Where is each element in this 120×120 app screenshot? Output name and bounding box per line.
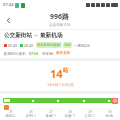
staticText: 最新机场	[40, 32, 63, 39]
staticText: 29	[88, 110, 92, 114]
button[interactable]: 详情	[63, 42, 72, 48]
staticText: 28	[68, 110, 72, 114]
staticText: 26	[29, 110, 33, 114]
staticText: 等车辆:	[42, 51, 54, 56]
staticText: 公交新街站	[4, 32, 32, 39]
staticText: 996路	[50, 12, 70, 22]
staticText: 30	[108, 110, 112, 114]
button[interactable]: 26	[22, 110, 39, 118]
button[interactable]: 28	[61, 110, 78, 118]
button[interactable]: 30	[101, 110, 118, 118]
staticText: 25	[9, 110, 13, 114]
staticText: 20:40	[24, 43, 34, 48]
staticText: 14分钟 / 5.2公里	[47, 82, 74, 87]
staticText: 距离时分发车:	[4, 51, 27, 56]
button[interactable]: 25	[2, 110, 19, 118]
staticText: ·	[70, 66, 72, 73]
staticText: 首末班时间准确	[37, 43, 61, 47]
staticText: 点击切换方向	[49, 23, 71, 28]
staticText: 14	[50, 66, 63, 81]
staticText: 07:50	[29, 51, 39, 56]
staticText: 05:40	[8, 43, 18, 48]
staticText: 定淮门	[64, 114, 75, 118]
button[interactable]: Back	[0, 12, 16, 28]
button[interactable]: 27	[42, 110, 59, 118]
staticText: 详情	[64, 43, 71, 47]
staticText: 草场门	[45, 114, 56, 118]
button[interactable]: 首末班时间准确	[36, 42, 62, 48]
staticText: 新街口	[5, 114, 16, 118]
button[interactable]: Bus	[4, 105, 9, 110]
button[interactable]: 29	[81, 110, 98, 118]
staticText: 汉中门	[25, 114, 36, 118]
button[interactable]: 公交新街站	[0, 30, 120, 58]
staticText: 07:24	[3, 2, 14, 8]
staticText: 27	[49, 110, 53, 114]
staticText: 站	[63, 67, 69, 74]
staticText: 机场	[106, 114, 113, 118]
staticText: 江东门	[84, 114, 95, 118]
staticText: 一票制2元	[74, 43, 91, 48]
staticText: →	[34, 33, 38, 38]
staticText: 最新更新	[56, 51, 71, 56]
button[interactable]: Bus position	[112, 98, 118, 104]
